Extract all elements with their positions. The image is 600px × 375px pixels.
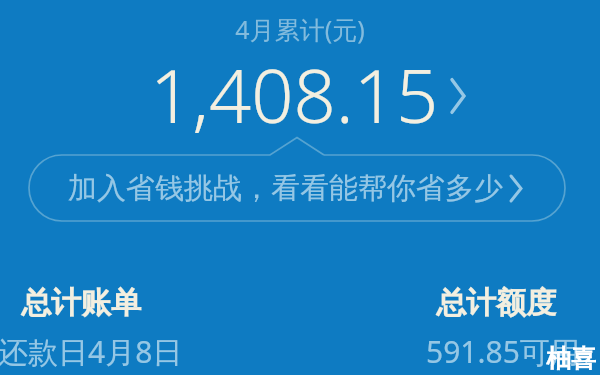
- staticText: 柚喜: [546, 343, 596, 374]
- staticText: 总计账单: [21, 284, 141, 322]
- staticText: 4月累计(元): [0, 12, 600, 46]
- staticText: 还款日4月8日: [0, 331, 183, 372]
- staticText: 1,408.15: [150, 44, 439, 145]
- button[interactable]: 总计账单: [21, 284, 206, 372]
- other: View monthly total details: [446, 77, 470, 115]
- staticText: 总计额度: [436, 284, 556, 322]
- button[interactable]: 1,408.15: [148, 44, 472, 145]
- staticText: 591.85可用: [426, 331, 580, 372]
- button[interactable]: 总计额度: [436, 284, 590, 372]
- button[interactable]: 加入省钱挑战，看看能帮你省多少: [29, 136, 565, 221]
- staticText: 加入省钱挑战，看看能帮你省多少: [68, 170, 503, 207]
